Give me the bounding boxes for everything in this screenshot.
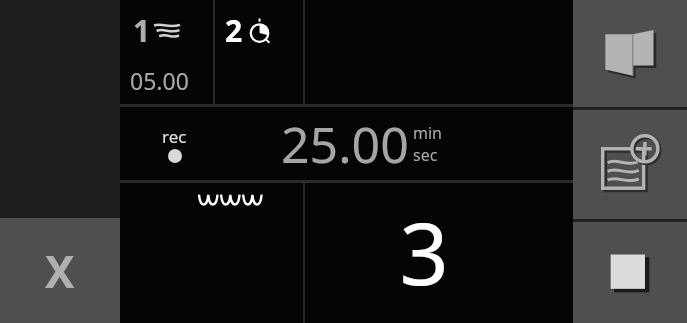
- staticText: 2: [225, 10, 243, 51]
- button[interactable]: Open library: [573, 0, 687, 107]
- staticText: 05.00: [130, 65, 189, 96]
- button[interactable]: Add new recording: [573, 110, 687, 219]
- button[interactable]: Close: [0, 218, 120, 323]
- button[interactable]: [120, 183, 303, 323]
- staticText: 3: [399, 193, 449, 310]
- staticText: 1: [133, 10, 151, 51]
- staticText: rec: [162, 125, 187, 148]
- staticText: min: [413, 122, 442, 144]
- staticText: sec: [413, 144, 438, 166]
- button[interactable]: 1: [120, 0, 213, 104]
- staticText: 25.00: [281, 110, 409, 178]
- staticText: X: [45, 241, 75, 301]
- button[interactable]: rec: [120, 107, 573, 180]
- button[interactable]: 2: [215, 0, 303, 104]
- button[interactable]: Stop: [573, 222, 687, 323]
- button[interactable]: 3: [305, 183, 573, 323]
